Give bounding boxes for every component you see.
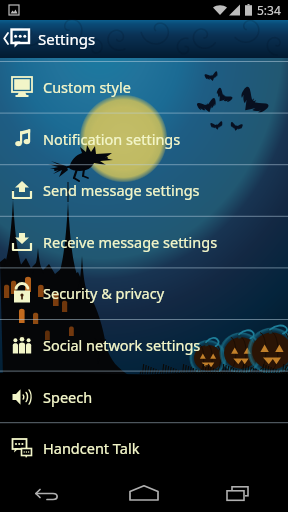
button[interactable]: Speech [0, 371, 288, 423]
button[interactable]: Send message settings [0, 164, 288, 216]
button[interactable]: Notification settings [0, 113, 288, 165]
button[interactable]: Receive message settings [0, 216, 288, 268]
button[interactable]: Back [0, 474, 96, 512]
button[interactable]: Home [96, 474, 192, 512]
button[interactable]: Custom style [0, 61, 288, 113]
staticText: Speech [43, 387, 93, 407]
staticText: Settings [38, 29, 96, 49]
button[interactable]: Recent apps [192, 474, 288, 512]
button[interactable]: Handcent Talk [0, 422, 288, 474]
staticText: Receive message settings [43, 232, 218, 252]
staticText: Custom style [43, 77, 131, 97]
staticText: Notification settings [43, 129, 181, 149]
staticText: Handcent Talk [43, 438, 140, 458]
staticText: Send message settings [43, 180, 200, 200]
staticText: Social network settings [43, 335, 201, 355]
staticText: 5:34 [257, 2, 281, 18]
button[interactable]: Social network settings [0, 319, 288, 371]
staticText: Security & privacy [43, 283, 165, 303]
button[interactable]: Security & privacy [0, 267, 288, 319]
button[interactable]: Navigate up [0, 20, 38, 58]
